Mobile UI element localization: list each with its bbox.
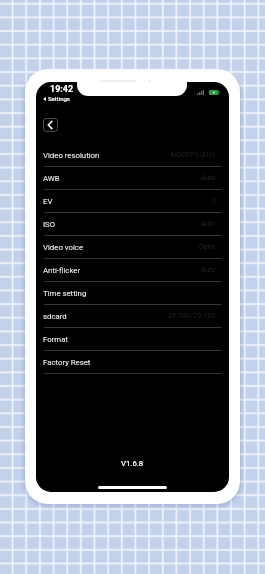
staticText: AWB [43,174,60,183]
button[interactable]: AWB [36,167,229,190]
staticText: Factory Reset [43,358,91,367]
button[interactable]: ISO [36,213,229,236]
staticText: 4K30FPS (EIS) [170,151,216,159]
staticText: Auto [201,220,216,228]
button[interactable]: EV [36,190,229,213]
button[interactable]: Back [43,118,58,132]
button[interactable]: Video voice [36,236,229,259]
button[interactable]: Format [36,328,229,351]
staticText: 19:42 [50,84,74,95]
staticText: Anti-flicker [43,266,81,275]
staticText: ISO [43,220,56,229]
staticText: EV [43,197,53,206]
staticText: Auto [201,266,216,274]
button[interactable]: Time setting [36,282,229,305]
button[interactable]: Factory Reset [36,351,229,374]
staticText: Time setting [43,289,87,298]
button[interactable]: Video resolution [36,144,229,167]
staticText: Settings [48,95,70,102]
button[interactable]: sdcard [36,305,229,328]
staticText: 0 [212,197,216,205]
button[interactable]: Anti-flicker [36,259,229,282]
staticText: sdcard [43,312,67,321]
staticText: Video resolution [43,151,100,160]
staticText: Auto [201,174,216,182]
staticText: Video voice [43,243,84,252]
staticText: Open [199,243,216,251]
staticText: 29.70G/29.72G [168,312,216,320]
staticText: V1.6.8 [121,459,144,468]
staticText: Format [43,335,68,344]
